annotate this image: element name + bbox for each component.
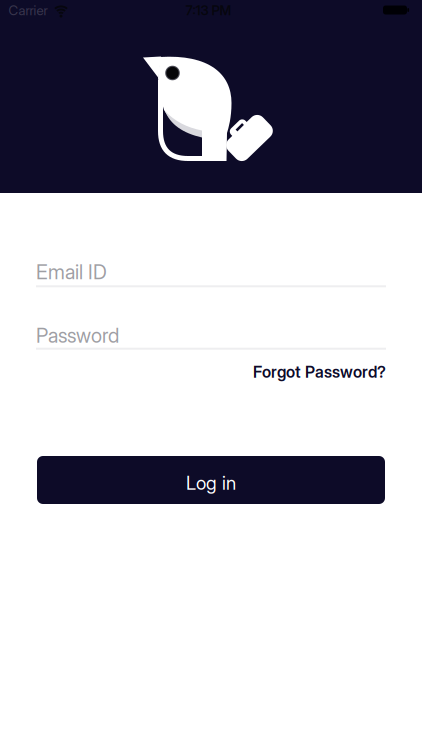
button[interactable]: Log in — [37, 456, 385, 504]
button[interactable]: Password — [36, 320, 386, 350]
staticText: Email ID — [36, 260, 107, 284]
staticText: Carrier — [8, 3, 47, 18]
button[interactable]: Forgot Password? — [253, 363, 386, 381]
button[interactable]: Email ID — [36, 257, 386, 287]
staticText: Log in — [186, 472, 236, 494]
staticText: 7:13 PM — [185, 3, 231, 18]
staticText: Password — [36, 324, 119, 347]
staticText: Forgot Password? — [253, 363, 386, 381]
